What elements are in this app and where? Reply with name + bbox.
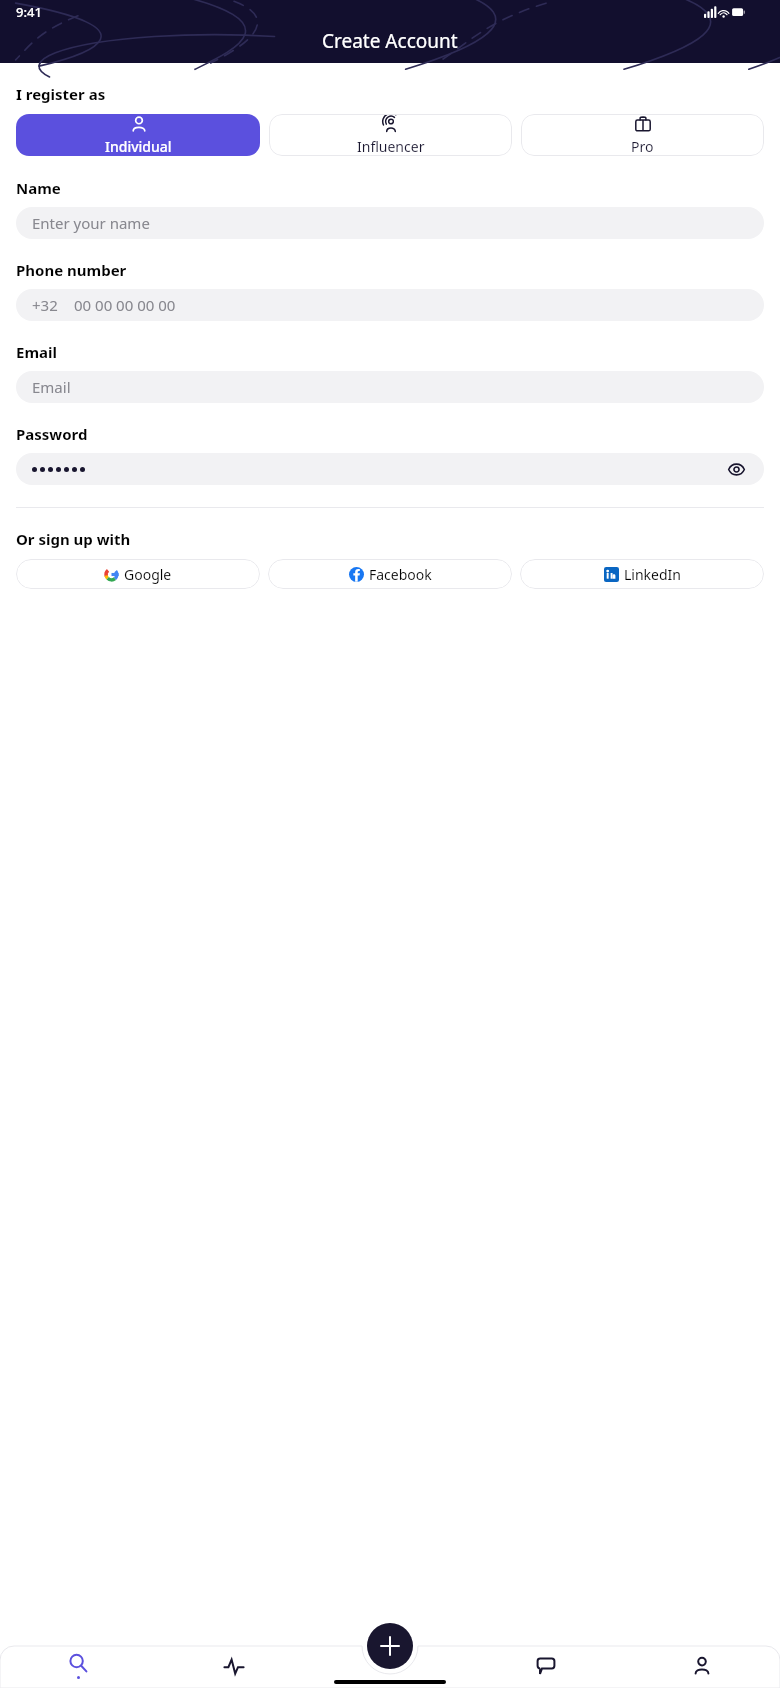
button[interactable]: Profile	[624, 1646, 780, 1686]
button[interactable]: Search	[0, 1646, 156, 1686]
staticText: +32	[32, 295, 58, 315]
button[interactable]: LinkedIn	[520, 559, 764, 589]
staticText: Phone number	[16, 260, 127, 280]
staticText: Individual	[105, 137, 172, 156]
button[interactable]: Facebook	[268, 559, 512, 589]
button[interactable]: +32	[16, 289, 764, 321]
staticText: Facebook	[369, 565, 432, 584]
button[interactable]: Email	[16, 371, 764, 403]
staticText: LinkedIn	[624, 565, 681, 584]
staticText: Name	[16, 178, 61, 198]
staticText: Email	[32, 377, 71, 397]
staticText: Enter your name	[32, 213, 150, 233]
button[interactable]: Messages	[468, 1646, 624, 1686]
button[interactable]: Enter your name	[16, 207, 764, 239]
button[interactable]: Activity	[156, 1646, 312, 1686]
button[interactable]: Show password	[16, 453, 764, 485]
button[interactable]: Pro	[521, 114, 764, 156]
staticText: Influencer	[357, 137, 425, 156]
staticText: Password	[16, 424, 88, 444]
staticText: 00 00 00 00 00	[74, 295, 176, 315]
staticText: I register as	[16, 84, 106, 104]
staticText: Google	[124, 565, 172, 584]
staticText: Or sign up with	[16, 529, 131, 549]
button[interactable]: Influencer	[269, 114, 512, 156]
staticText: 9:41	[16, 3, 42, 21]
button[interactable]: Add	[367, 1623, 413, 1669]
button[interactable]: Individual	[16, 114, 260, 156]
staticText: Pro	[631, 137, 654, 156]
button[interactable]: Show password	[724, 457, 748, 481]
staticText: Email	[16, 342, 57, 362]
button[interactable]: Google	[16, 559, 260, 589]
staticText: Create Account	[322, 28, 458, 54]
